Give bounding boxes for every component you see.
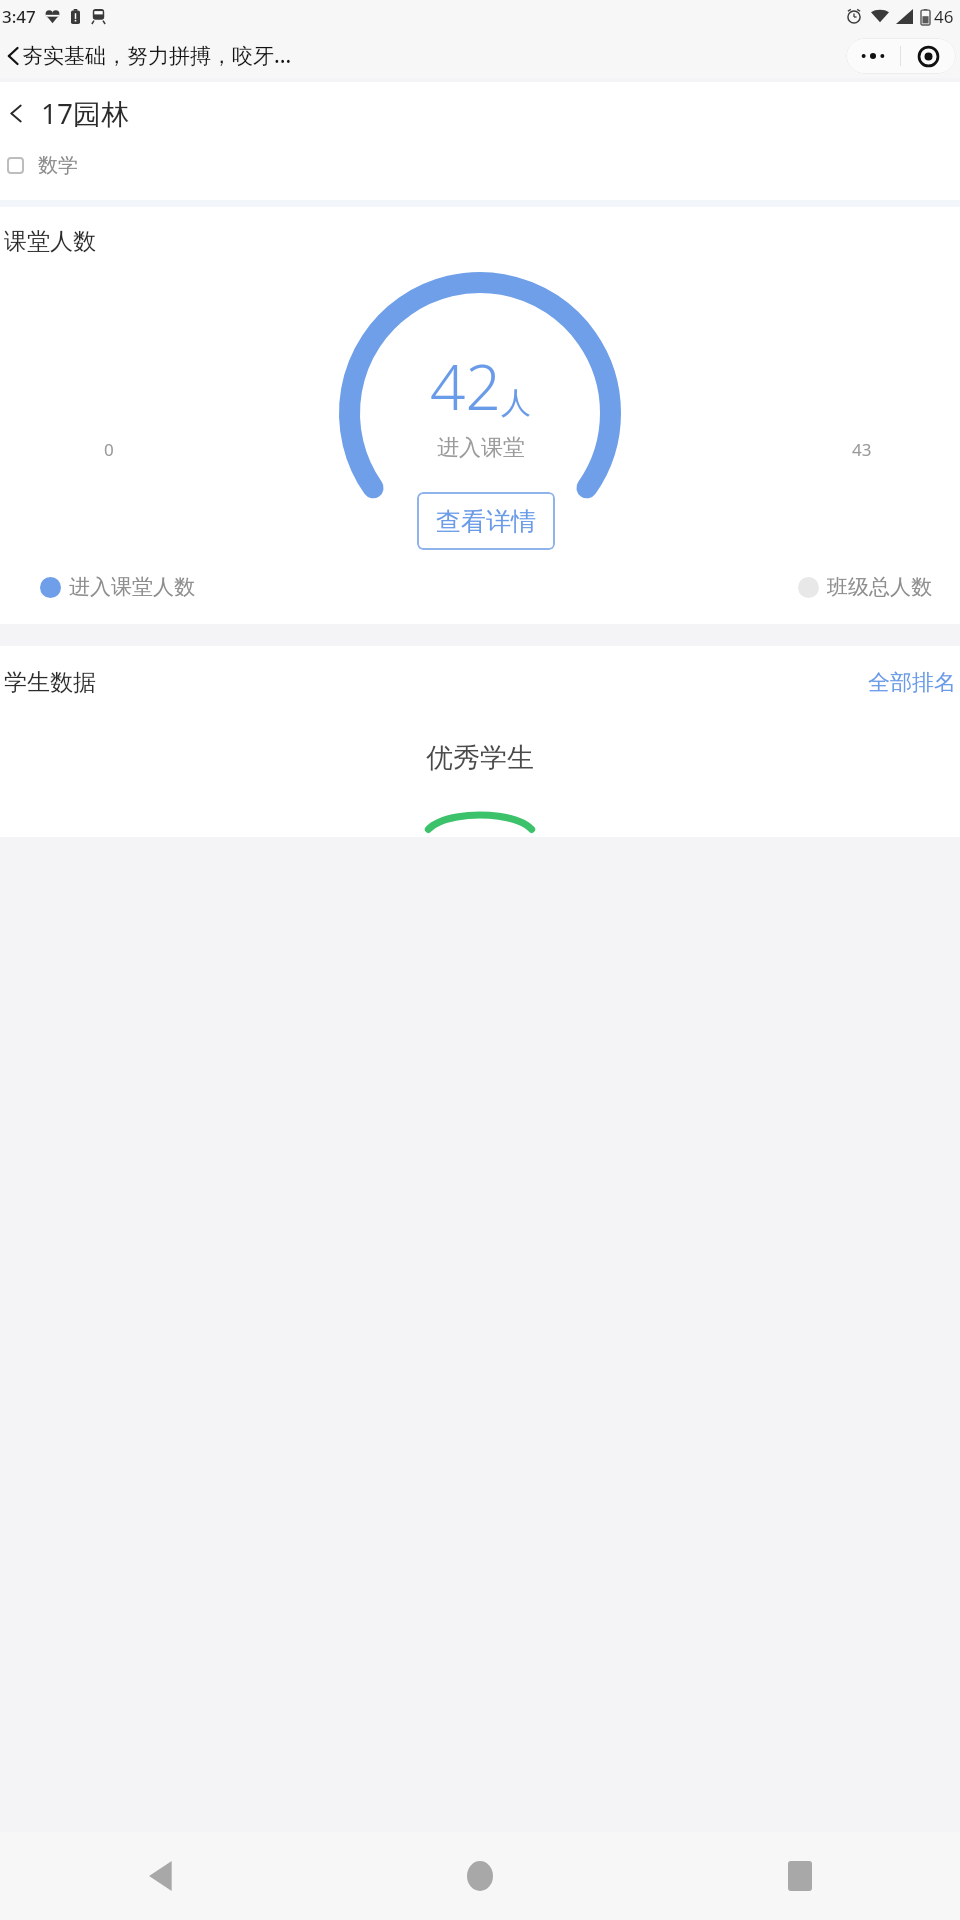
button[interactable]: 班级总人数 [798, 574, 932, 600]
staticText: 42 [430, 344, 501, 428]
staticText: 课堂人数 [4, 227, 96, 256]
staticText: 3:47 [2, 5, 36, 28]
staticText: 优秀学生 [426, 741, 534, 775]
staticText: 夯实基础，努力拼搏，咬牙... [22, 41, 292, 70]
button[interactable]: 进入课堂人数 [40, 574, 195, 600]
button[interactable]: Back [0, 1832, 320, 1920]
button[interactable]: 数学 [38, 153, 78, 178]
staticText: 学生数据 [4, 668, 96, 697]
staticText: 班级总人数 [827, 574, 932, 600]
button[interactable]: Home [320, 1832, 640, 1920]
staticText: 查看详情 [436, 506, 536, 537]
button[interactable]: 查看详情 [417, 492, 555, 550]
staticText: 进入课堂人数 [69, 574, 195, 600]
staticText: 人 [501, 384, 531, 422]
button[interactable]: Back [1, 98, 31, 128]
staticText: 全部排名 [868, 669, 956, 697]
button[interactable]: More [846, 38, 900, 74]
staticText: 46 [934, 5, 954, 28]
button[interactable]: Close [901, 38, 956, 74]
button[interactable]: Recents [640, 1832, 960, 1920]
button[interactable]: 全部排名 [868, 669, 956, 697]
button[interactable]: Subject [2, 152, 28, 178]
staticText: 43 [852, 438, 872, 461]
staticText: 17园林 [41, 94, 130, 132]
button[interactable]: Back [1, 43, 27, 69]
staticText: 0 [104, 438, 114, 461]
staticText: 进入课堂 [437, 434, 525, 462]
